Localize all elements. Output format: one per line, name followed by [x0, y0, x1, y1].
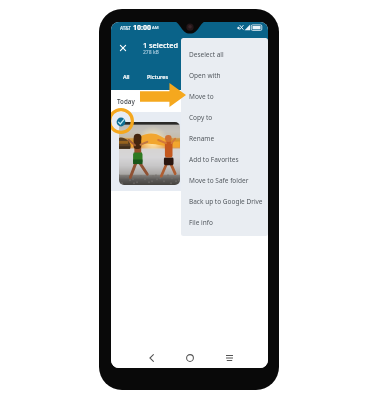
button[interactable]: All	[117, 69, 135, 83]
button[interactable]: Deselect all	[181, 44, 268, 65]
staticText: Pictures	[147, 73, 169, 80]
button[interactable]: Move to	[181, 86, 268, 107]
button[interactable]: Move to Safe folder	[181, 170, 268, 191]
staticText: AT&T	[120, 25, 131, 31]
button[interactable]: Back	[141, 346, 161, 368]
staticText: 278 kB	[143, 49, 159, 56]
staticText: AM	[152, 25, 159, 31]
button[interactable]: Close selection	[114, 39, 131, 56]
staticText: Rename	[189, 134, 215, 143]
staticText: Add to Favorites	[189, 155, 239, 164]
staticText: Copy to	[189, 113, 213, 122]
button[interactable]: Selected photo	[119, 122, 180, 185]
button[interactable]: Pictures	[146, 69, 170, 83]
staticText: Back up to Google Drive	[189, 197, 263, 206]
staticText: Open with	[189, 71, 221, 80]
staticText: Move to	[189, 92, 214, 101]
staticText: 10:00	[133, 23, 151, 33]
staticText: All	[123, 73, 130, 80]
staticText: 1 selected	[143, 40, 179, 50]
staticText: File info	[189, 218, 213, 227]
button[interactable]: Recent apps	[219, 346, 239, 368]
button[interactable]: Open with	[181, 65, 268, 86]
button[interactable]: Copy to	[181, 107, 268, 128]
staticText: Today	[117, 97, 135, 105]
button[interactable]: Rename	[181, 128, 268, 149]
button[interactable]: Back up to Google Drive	[181, 191, 268, 212]
button[interactable]: File info	[181, 212, 268, 233]
button[interactable]: Add to Favorites	[181, 149, 268, 170]
staticText: Move to Safe folder	[189, 176, 249, 185]
button[interactable]: Home	[180, 346, 200, 368]
staticText: Deselect all	[189, 50, 224, 59]
